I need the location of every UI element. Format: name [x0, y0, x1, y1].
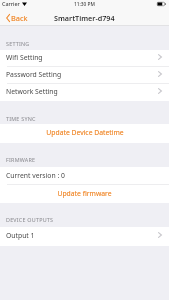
staticText: Current version : 0 [6, 171, 65, 180]
button[interactable]: Update firmware [0, 185, 169, 203]
button[interactable]: Wifi Setting [0, 50, 169, 67]
staticText: Update firmware [57, 189, 112, 198]
button[interactable]: Network Setting [0, 84, 169, 101]
button[interactable]: Back [0, 10, 34, 26]
button[interactable]: Update Device Datetime [0, 124, 169, 143]
staticText: Wifi Setting [6, 53, 43, 62]
staticText: FIRMWARE [6, 156, 36, 163]
staticText: Network Setting [6, 87, 58, 96]
staticText: Password Setting [6, 70, 62, 79]
staticText: SmartTimer-d794 [54, 13, 115, 23]
staticText: 11:30 PM [74, 1, 95, 8]
staticText: TIME SYNC [6, 115, 36, 122]
staticText: SETTING [6, 40, 30, 47]
staticText: Output 1 [6, 231, 35, 240]
staticText: Back [11, 13, 28, 23]
other: Wi-Fi [22, 2, 27, 6]
staticText: Update Device Datetime [46, 128, 124, 137]
button[interactable]: Password Setting [0, 67, 169, 84]
button[interactable]: Output 1 [0, 227, 169, 246]
staticText: Carrier [2, 0, 20, 7]
staticText: DEVICE OUTPUTS [6, 216, 54, 223]
